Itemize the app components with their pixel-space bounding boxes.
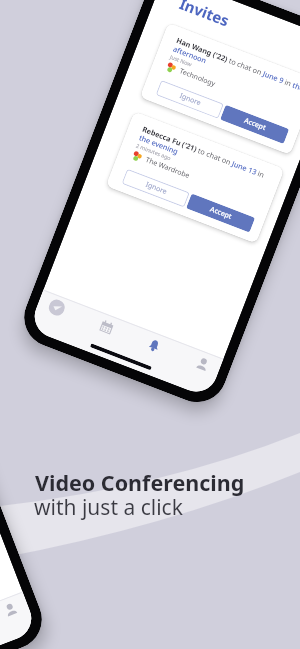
- staticText: 2 minutes ago: [135, 142, 172, 161]
- button[interactable]: Ignore: [156, 80, 224, 119]
- staticText: with just a click: [34, 493, 183, 522]
- button[interactable]: Ignore: [122, 169, 190, 207]
- staticText: Rebecca Fu ('21) to chat on June 13 in t…: [138, 124, 272, 191]
- button[interactable]: Account: [2, 601, 19, 618]
- staticText: Accept: [243, 116, 268, 133]
- staticText: The Wardrobe: [144, 155, 191, 181]
- staticText: Video Conferencing: [35, 468, 245, 497]
- button[interactable]: Calendar: [98, 319, 115, 336]
- staticText: Accept: [208, 204, 234, 222]
- button[interactable]: Send: [46, 297, 67, 318]
- button[interactable]: Rebecca Fu ('21) to chat on June 13 in t…: [106, 111, 285, 244]
- staticText: Invites: [177, 0, 232, 31]
- button[interactable]: Account: [194, 356, 211, 373]
- button[interactable]: Han Wang ('22) to chat on June 9 in the …: [140, 23, 300, 155]
- staticText: Han Wang ('22) to chat on June 9 in the …: [172, 35, 300, 102]
- staticText: Ignore: [178, 91, 202, 108]
- staticText: Ignore: [144, 180, 168, 197]
- button[interactable]: Accept: [220, 105, 289, 144]
- staticText: Technology: [178, 66, 217, 89]
- button[interactable]: Accept: [186, 193, 255, 233]
- staticText: Just Now: [169, 53, 193, 68]
- button[interactable]: Notifications: [146, 337, 163, 354]
